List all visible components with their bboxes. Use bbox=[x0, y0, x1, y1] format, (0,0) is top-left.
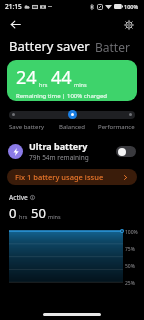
staticText: 24 bbox=[16, 65, 37, 90]
staticText: 79h 54m remaining bbox=[29, 153, 89, 162]
staticText: Ultra battery saver bbox=[29, 140, 112, 152]
staticText: 21:15 bbox=[5, 2, 22, 11]
button[interactable]: 24 bbox=[7, 60, 137, 101]
button[interactable]: Ultra battery saver bbox=[0, 140, 144, 162]
staticText: 0 bbox=[9, 204, 17, 222]
staticText: Fix 1 battery usage issue bbox=[15, 172, 104, 182]
staticText: 75% bbox=[125, 246, 135, 253]
staticText: Remaining time | 100% charged bbox=[16, 92, 107, 100]
button[interactable]: Fix 1 battery usage issue bbox=[7, 169, 137, 185]
staticText: hrs bbox=[39, 81, 48, 88]
button[interactable]: Battery bbox=[95, 39, 135, 55]
button[interactable]: Settings bbox=[120, 16, 137, 33]
button[interactable]: Battery saver bbox=[9, 37, 90, 55]
staticText: 50 bbox=[31, 204, 46, 222]
staticText: Performance bbox=[98, 123, 135, 131]
button[interactable] bbox=[9, 109, 135, 120]
staticText: 50% bbox=[125, 263, 135, 270]
staticText: Active bbox=[9, 193, 28, 202]
staticText: 100% bbox=[124, 3, 139, 10]
button[interactable]: Ultra battery saver toggle bbox=[116, 146, 136, 157]
staticText: mins bbox=[48, 213, 61, 220]
staticText: Battery bbox=[95, 39, 135, 55]
staticText: Save battery bbox=[9, 123, 44, 131]
staticText: mins bbox=[74, 81, 87, 88]
staticText: 100% bbox=[125, 229, 138, 236]
staticText: 25% bbox=[125, 280, 135, 287]
staticText: 44 bbox=[51, 65, 72, 90]
staticText: hrs bbox=[19, 213, 28, 220]
staticText: Battery saver bbox=[9, 37, 90, 55]
staticText: Balanced bbox=[59, 123, 85, 131]
button[interactable]: Back bbox=[7, 16, 24, 33]
